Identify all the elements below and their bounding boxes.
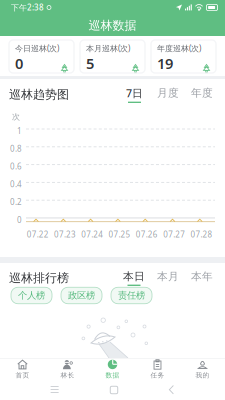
staticText: 5 — [86, 54, 94, 73]
staticText: 0 — [17, 214, 22, 225]
staticText: 数据 — [105, 371, 119, 379]
button[interactable]: 本月巡林(次) — [80, 40, 145, 73]
button[interactable]: Recents — [51, 386, 60, 394]
staticText: 本年 — [191, 270, 213, 283]
staticText: 首页 — [15, 371, 29, 379]
button[interactable]: 数据 — [90, 359, 135, 380]
staticText: 07.28 — [190, 229, 212, 240]
staticText: 林长 — [60, 371, 74, 379]
button[interactable]: 本日 — [123, 270, 145, 285]
staticText: 19 — [157, 54, 173, 73]
staticText: 0.2 — [10, 197, 22, 207]
staticText: 7日 — [126, 86, 143, 100]
staticText: 巡林排行榜 — [9, 271, 69, 285]
staticText: 月度 — [157, 86, 179, 100]
staticText: 巡林趋势图 — [9, 87, 69, 102]
button[interactable]: 月度 — [157, 87, 179, 102]
staticText: 07.27 — [163, 229, 185, 240]
button[interactable]: 年度 — [191, 87, 213, 102]
button[interactable]: Back — [168, 385, 174, 394]
button[interactable]: 我的 — [180, 359, 225, 380]
button[interactable]: 7日 — [126, 87, 143, 102]
staticText: 0 — [15, 54, 23, 73]
staticText: 本日 — [123, 270, 145, 283]
staticText: 07.23 — [54, 229, 76, 240]
staticText: 07.22 — [27, 229, 49, 240]
staticText: 本月巡林(次) — [86, 43, 130, 53]
staticText: 年度巡林(次) — [157, 43, 201, 53]
staticText: 政区榜 — [68, 290, 95, 301]
button[interactable]: 本月 — [157, 270, 179, 285]
button[interactable]: Home — [110, 386, 118, 394]
button[interactable]: 首页 — [0, 359, 45, 380]
staticText: 个人榜 — [18, 290, 45, 301]
staticText: 次 — [12, 112, 20, 122]
staticText: 今日巡林(次) — [15, 43, 59, 53]
staticText: 我的 — [195, 371, 209, 379]
staticText: 07.25 — [109, 229, 131, 240]
button[interactable]: 政区榜 — [61, 287, 102, 304]
staticText: 0.6 — [10, 161, 22, 172]
button[interactable]: 个人榜 — [11, 287, 52, 304]
staticText: 本月 — [157, 270, 179, 283]
staticText: 0.4 — [10, 179, 22, 189]
button[interactable]: 年度巡林(次) — [151, 40, 216, 73]
button[interactable]: 今日巡林(次) — [9, 40, 74, 73]
staticText: 07.26 — [136, 229, 158, 240]
staticText: 1 — [17, 125, 22, 136]
staticText: 0.8 — [10, 143, 22, 154]
staticText: 下午2:38 — [11, 2, 44, 13]
button[interactable]: 林长 — [45, 359, 90, 380]
button[interactable]: 任务 — [135, 359, 180, 380]
staticText: 年度 — [191, 86, 213, 100]
staticText: 责任榜 — [118, 290, 145, 301]
staticText: 任务 — [150, 371, 164, 379]
button[interactable]: 责任榜 — [111, 287, 152, 304]
button[interactable]: 本年 — [191, 270, 213, 285]
staticText: 巡林数据 — [88, 18, 136, 33]
staticText: 07.24 — [81, 229, 103, 240]
